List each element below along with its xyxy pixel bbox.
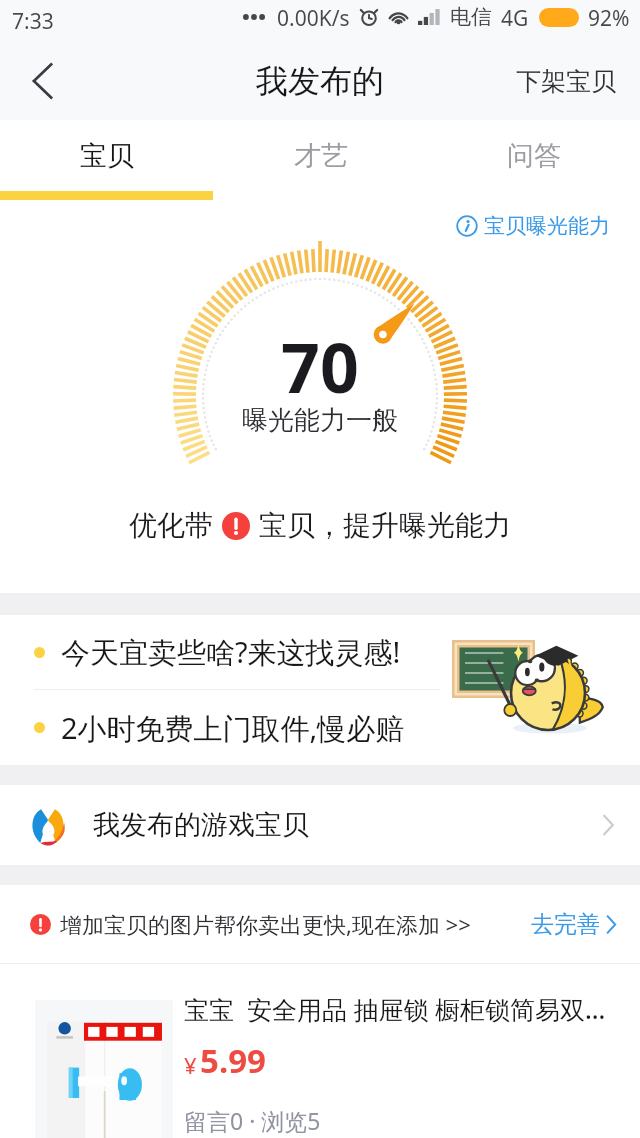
staticText: 电信 <box>450 4 492 30</box>
button[interactable]: 宝宝 安全用品 抽屉锁 橱柜锁简易双... <box>0 964 640 1136</box>
button[interactable]: 宝贝 <box>0 120 214 191</box>
staticText: 0.00K/s <box>277 4 350 30</box>
staticText: 问答 <box>507 139 561 173</box>
button[interactable]: 下架宝贝 <box>492 42 640 120</box>
other: Open <box>600 813 616 837</box>
staticText: 下架宝贝 <box>516 66 616 97</box>
staticText: 留言0 · 浏览5 <box>184 1105 321 1136</box>
button[interactable]: 我发布的游戏宝贝 <box>0 785 640 865</box>
button[interactable]: 增加宝贝的图片帮你卖出更快,现在添加 >> <box>0 885 640 963</box>
staticText: 我发布的 <box>256 61 384 101</box>
staticText: 优化带 <box>129 508 213 543</box>
staticText: 70 <box>281 320 359 413</box>
staticText: 宝宝 安全用品 抽屉锁 橱柜锁简易双... <box>184 992 606 1026</box>
staticText: 才艺 <box>294 139 348 173</box>
button[interactable]: 宝贝曝光能力 <box>444 200 640 247</box>
staticText: 92% <box>588 4 630 30</box>
button[interactable]: Back <box>0 42 86 120</box>
staticText: 宝贝，提升曝光能力 <box>259 508 511 543</box>
staticText: 曝光能力一般 <box>242 404 398 437</box>
button[interactable]: 今天宜卖些啥?来这找灵感! <box>34 615 440 689</box>
staticText: 我发布的游戏宝贝 <box>93 808 309 842</box>
staticText: 宝贝曝光能力 <box>484 213 610 239</box>
staticText: 宝贝 <box>80 139 134 173</box>
staticText: 去完善 <box>531 910 600 939</box>
staticText: 4G <box>501 4 529 30</box>
button[interactable]: 2小时免费上门取件,慢必赔 <box>34 690 440 765</box>
staticText: 今天宜卖些啥?来这找灵感! <box>61 632 401 672</box>
staticText: 2小时免费上门取件,慢必赔 <box>61 708 405 748</box>
staticText: ¥ <box>184 1050 197 1080</box>
staticText: 增加宝贝的图片帮你卖出更快,现在添加 >> <box>60 909 471 939</box>
button[interactable]: 问答 <box>427 120 640 191</box>
staticText: 7:33 <box>12 7 54 36</box>
button[interactable]: 才艺 <box>214 120 427 191</box>
staticText: 5.99 <box>200 1038 266 1083</box>
button[interactable]: 优化带 <box>129 508 511 543</box>
